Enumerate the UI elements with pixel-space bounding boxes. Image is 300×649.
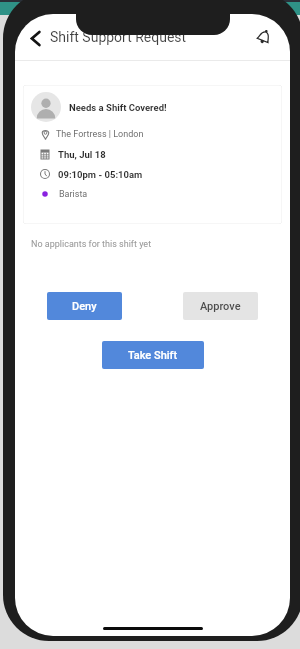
staticText: No applicants for this shift yet bbox=[31, 239, 152, 250]
button[interactable]: Notifications bbox=[248, 21, 280, 53]
staticText: Take Shift bbox=[128, 349, 178, 362]
staticText: Shift Support Request bbox=[50, 29, 187, 45]
button[interactable]: Back bbox=[19, 22, 51, 54]
staticText: Needs a Shift Covered! bbox=[69, 102, 167, 113]
staticText: Barista bbox=[59, 189, 88, 200]
staticText: Approve bbox=[200, 300, 241, 313]
staticText: Deny bbox=[72, 300, 97, 313]
button[interactable]: Take Shift bbox=[102, 341, 204, 369]
staticText: The Fortress | London bbox=[56, 129, 144, 140]
button[interactable]: Deny bbox=[47, 292, 122, 320]
button[interactable]: Approve bbox=[183, 292, 258, 320]
staticText: 09:10pm - 05:10am bbox=[58, 169, 143, 180]
staticText: Thu, Jul 18 bbox=[58, 149, 106, 160]
